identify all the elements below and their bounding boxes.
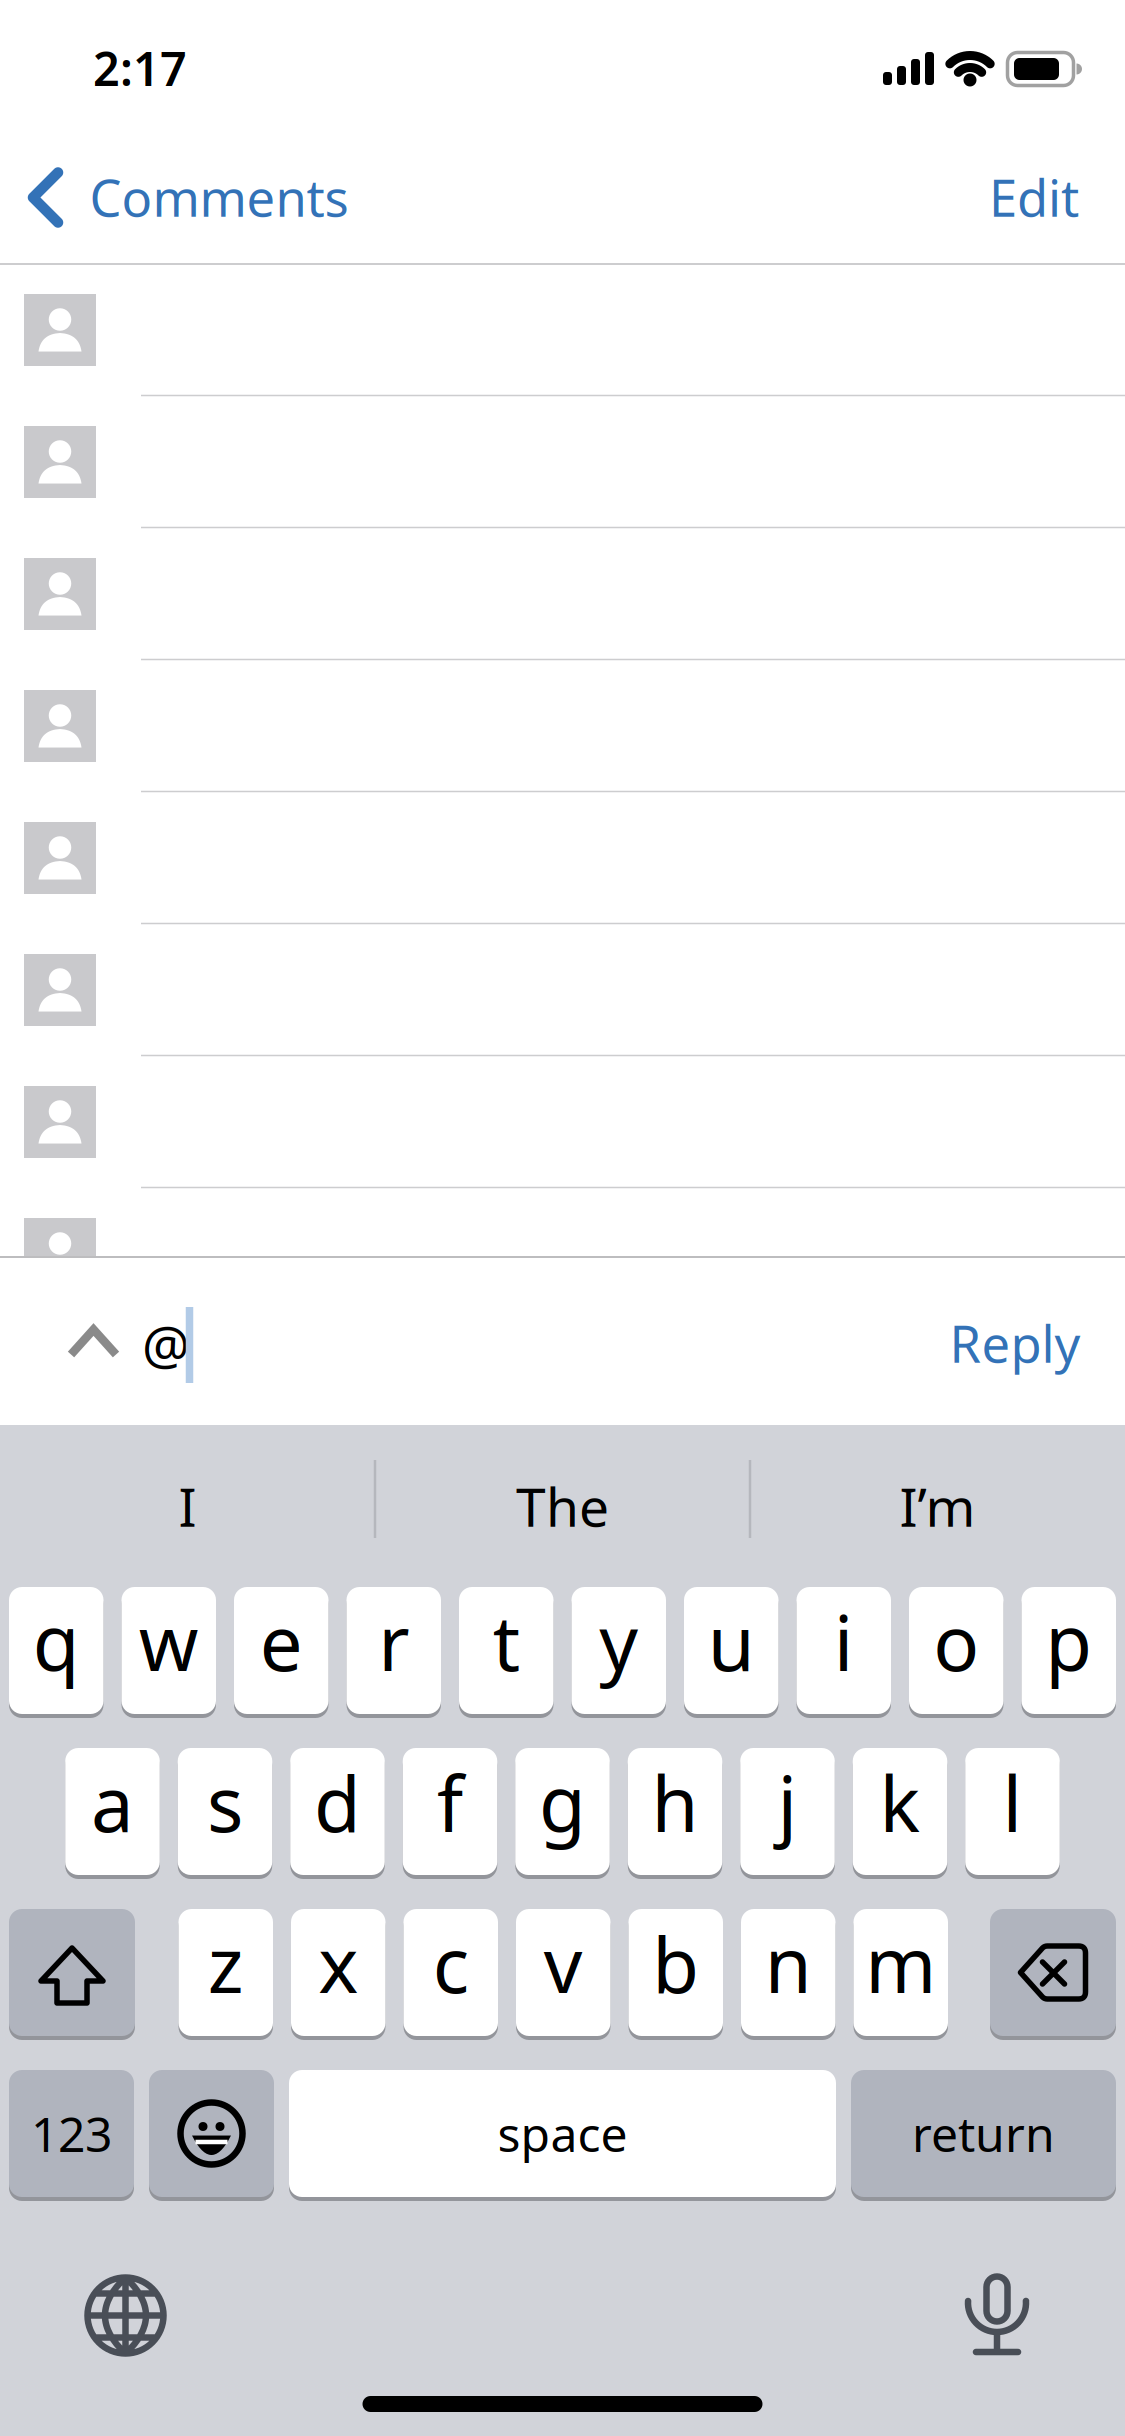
button[interactable] (84, 2274, 166, 2356)
staticText: d (314, 1752, 361, 1853)
staticText: e (260, 1591, 303, 1692)
staticText: t (493, 1591, 520, 1692)
staticText: The (516, 1471, 609, 1541)
button[interactable]: h (628, 1746, 722, 1877)
staticText: o (933, 1591, 979, 1692)
staticText: y (599, 1591, 638, 1692)
staticText: return (912, 2102, 1055, 2165)
button[interactable]: v (516, 1907, 610, 2038)
staticText: s (207, 1752, 243, 1853)
staticText: q (33, 1591, 80, 1692)
staticText: u (708, 1591, 755, 1692)
button[interactable]: k (853, 1746, 947, 1877)
button[interactable] (66, 1325, 121, 1358)
staticText: a (91, 1752, 134, 1853)
staticText: Comments (89, 163, 348, 231)
button[interactable]: y (571, 1585, 666, 1716)
staticText: p (1045, 1591, 1092, 1692)
staticText: l (1002, 1752, 1022, 1853)
button[interactable] (27, 168, 65, 226)
button[interactable]: e (234, 1585, 328, 1716)
button[interactable]: u (684, 1585, 778, 1716)
staticText: Reply (949, 1309, 1080, 1377)
staticText: x (318, 1913, 358, 2014)
button[interactable]: t (459, 1585, 553, 1716)
button[interactable] (9, 1907, 135, 2038)
button[interactable]: 123 (9, 2068, 134, 2199)
button[interactable] (0, 660, 1125, 792)
button[interactable] (0, 1188, 1125, 1320)
button[interactable] (0, 792, 1125, 924)
button[interactable]: Reply (949, 1309, 1080, 1377)
button[interactable] (0, 396, 1125, 528)
button[interactable]: b (628, 1907, 723, 2038)
button[interactable] (0, 1056, 1125, 1188)
button[interactable]: Edit (989, 131, 1079, 263)
button[interactable]: m (853, 1907, 948, 2038)
staticText: r (378, 1591, 409, 1692)
button[interactable]: l (965, 1746, 1060, 1877)
staticText: @ (142, 1309, 190, 1379)
button[interactable]: g (515, 1746, 610, 1877)
staticText: w (139, 1591, 199, 1692)
button[interactable] (0, 924, 1125, 1056)
button[interactable]: p (1021, 1585, 1116, 1716)
staticText: h (651, 1752, 698, 1853)
button[interactable]: n (741, 1907, 835, 2038)
staticText: v (544, 1913, 583, 2014)
staticText: i (834, 1591, 854, 1692)
staticText: k (879, 1752, 920, 1853)
button[interactable]: f (403, 1746, 497, 1877)
staticText: b (652, 1913, 699, 2014)
staticText: g (539, 1752, 586, 1853)
button[interactable]: j (740, 1746, 835, 1877)
staticText: f (437, 1752, 463, 1853)
button[interactable] (0, 528, 1125, 660)
button[interactable]: return (851, 2068, 1116, 2199)
button[interactable]: i (796, 1585, 891, 1716)
staticText: z (208, 1913, 244, 2014)
button[interactable]: c (403, 1907, 498, 2038)
button[interactable] (149, 2068, 274, 2199)
button[interactable]: Comments (89, 131, 348, 263)
staticText: 123 (31, 2102, 112, 2165)
button[interactable]: I (7, 1446, 367, 1566)
button[interactable]: z (178, 1907, 273, 2038)
button[interactable] (0, 264, 1125, 396)
button[interactable]: d (290, 1746, 385, 1877)
staticText: m (865, 1913, 936, 2014)
button[interactable]: x (291, 1907, 385, 2038)
staticText: n (765, 1913, 812, 2014)
staticText: c (433, 1913, 469, 2014)
button[interactable] (990, 1907, 1116, 2038)
button[interactable]: o (909, 1585, 1003, 1716)
button[interactable]: I’m (757, 1446, 1117, 1566)
button[interactable]: q (9, 1585, 103, 1716)
staticText: Edit (989, 163, 1079, 231)
button[interactable]: w (121, 1585, 216, 1716)
button[interactable]: r (346, 1585, 441, 1716)
staticText: space (497, 2102, 627, 2165)
button[interactable]: s (178, 1746, 272, 1877)
staticText: 2:17 (93, 37, 187, 99)
staticText: I (178, 1471, 196, 1541)
button[interactable]: space (289, 2068, 836, 2199)
button[interactable]: a (65, 1746, 160, 1877)
staticText: I’m (899, 1471, 975, 1541)
staticText: j (777, 1752, 797, 1853)
button[interactable]: The (382, 1446, 742, 1566)
button[interactable] (969, 2271, 1027, 2355)
